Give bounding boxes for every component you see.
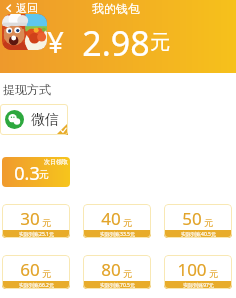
button[interactable]: 50 <box>164 204 232 238</box>
staticText: 50 <box>182 207 202 230</box>
staticText: 2.98 <box>82 20 150 66</box>
staticText: 30 <box>20 207 40 230</box>
staticText: 实际到账25.1元 <box>19 231 54 238</box>
staticText: 元 <box>204 217 213 228</box>
button[interactable]: 微信 <box>0 104 68 135</box>
button[interactable]: 80 <box>83 255 151 289</box>
staticText: 元 <box>42 217 51 228</box>
button[interactable]: 返回 <box>3 1 38 15</box>
button[interactable]: 100 <box>164 255 232 289</box>
button[interactable]: 30 <box>2 204 70 238</box>
button[interactable]: 次日领取 <box>2 157 70 187</box>
staticText: 次日领取 <box>44 158 68 166</box>
staticText: 实际到账40.5元 <box>181 231 216 238</box>
staticText: 元 <box>39 168 49 181</box>
staticText: 返回 <box>16 1 38 15</box>
staticText: 元 <box>209 268 218 279</box>
staticText: 80 <box>101 258 121 281</box>
staticText: 微信 <box>31 111 59 129</box>
staticText: 提现方式 <box>3 82 51 97</box>
button[interactable]: 40 <box>83 204 151 238</box>
staticText: 0.3 <box>14 161 40 186</box>
staticText: 元 <box>42 268 51 279</box>
staticText: ¥ <box>47 22 64 61</box>
staticText: 实际到账66.2元 <box>19 282 54 289</box>
staticText: 60 <box>20 258 40 281</box>
staticText: 实际到账97元 <box>183 282 214 289</box>
staticText: 我的钱包 <box>92 1 140 16</box>
staticText: 元 <box>123 268 132 279</box>
staticText: 实际到账70.5元 <box>100 282 135 289</box>
staticText: 元 <box>123 217 132 228</box>
staticText: 元 <box>150 30 170 55</box>
staticText: 100 <box>177 258 207 281</box>
staticText: 40 <box>101 207 121 230</box>
button[interactable]: 60 <box>2 255 70 289</box>
staticText: 实际到账33.5元 <box>100 231 135 238</box>
